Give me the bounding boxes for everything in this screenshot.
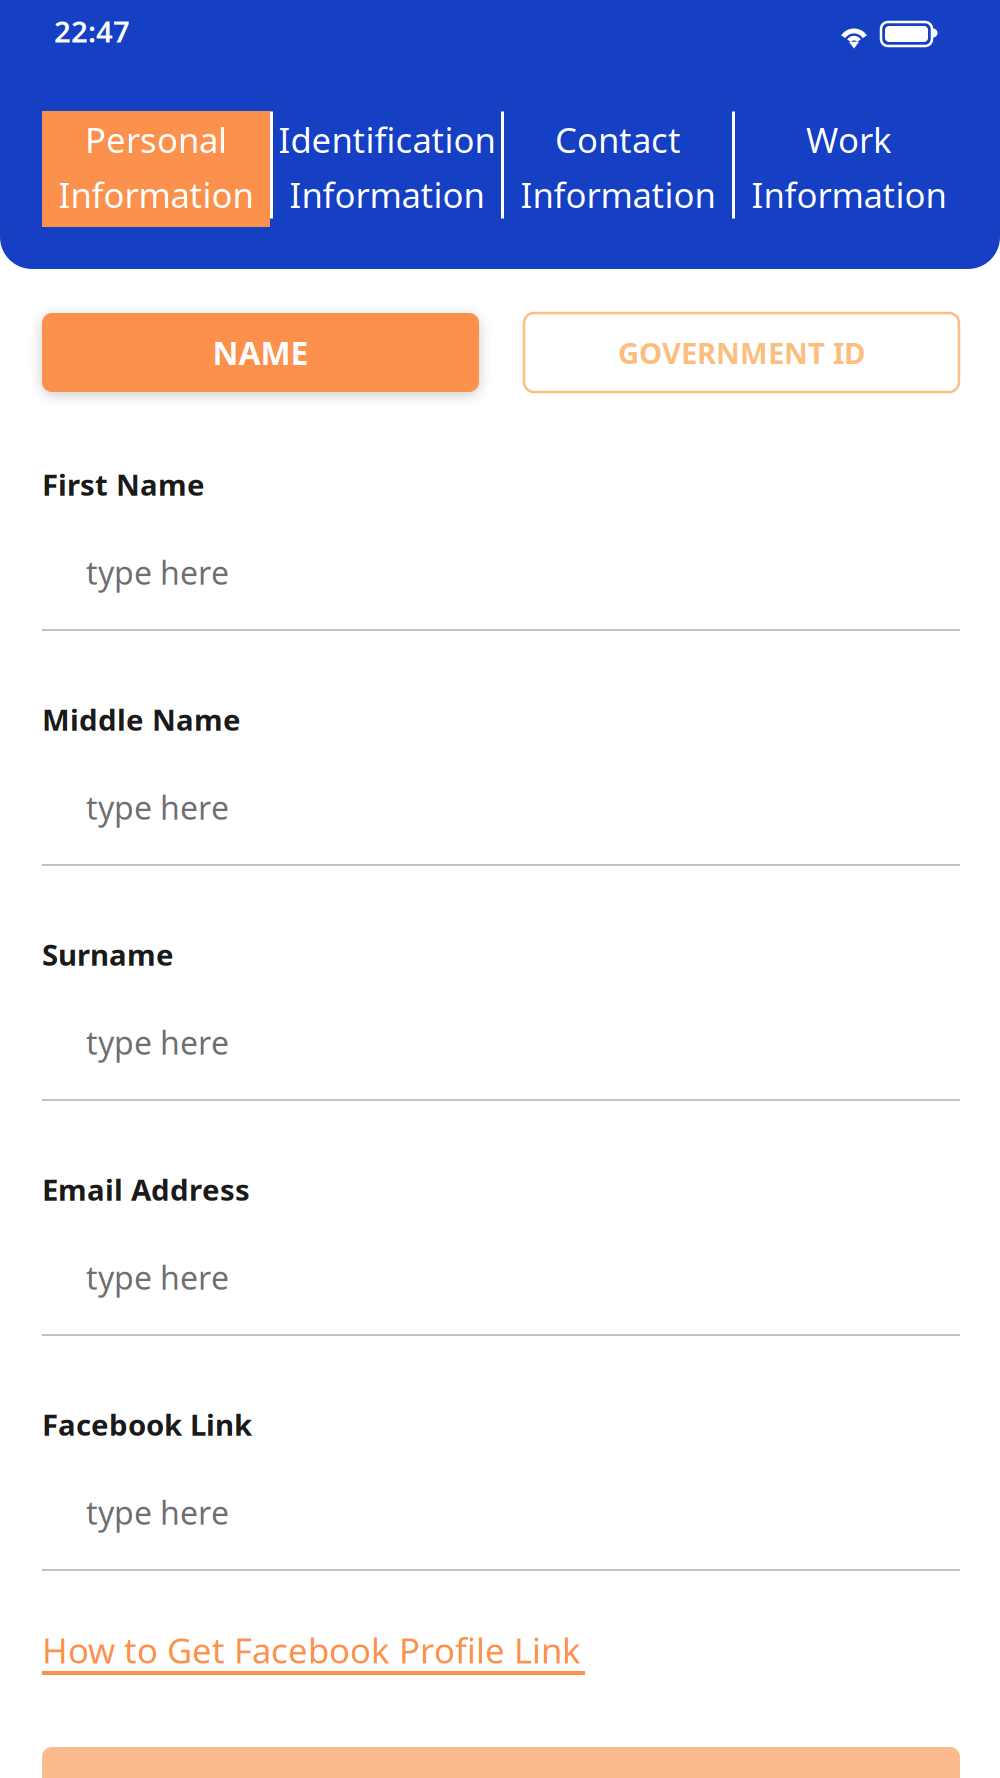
staticText: Email Address xyxy=(42,1170,250,1209)
staticText: Information xyxy=(58,171,253,217)
staticText: Information xyxy=(289,171,484,217)
staticText: type here xyxy=(86,551,229,593)
button[interactable]: Identification xyxy=(273,111,501,227)
staticText: Contact xyxy=(555,116,681,162)
staticText: Information xyxy=(520,171,715,217)
staticText: NAME xyxy=(212,331,308,374)
staticText: Facebook Link xyxy=(42,1405,252,1444)
staticText: Information xyxy=(751,171,946,217)
staticText: type here xyxy=(86,1021,229,1063)
staticText: First Name xyxy=(42,465,205,504)
button[interactable]: Work xyxy=(735,111,963,227)
staticText: Work xyxy=(806,116,892,162)
button[interactable]: NAME xyxy=(42,313,479,392)
button[interactable]: GOVERNMENT ID xyxy=(524,313,959,392)
staticText: type here xyxy=(86,1256,229,1298)
button[interactable]: Contact xyxy=(504,111,732,227)
staticText: type here xyxy=(86,1491,229,1533)
staticText: Identification xyxy=(278,116,495,162)
staticText: type here xyxy=(86,786,229,828)
staticText: Surname xyxy=(42,935,174,974)
staticText: Personal xyxy=(85,116,227,162)
button[interactable]: Next xyxy=(42,1747,960,1778)
staticText: GOVERNMENT ID xyxy=(618,333,865,372)
button[interactable]: Personal xyxy=(42,111,270,227)
staticText: 22:47 xyxy=(54,11,130,50)
staticText: How to Get Facebook Profile Link xyxy=(42,1627,581,1673)
staticText: Middle Name xyxy=(42,700,241,739)
button[interactable]: How to Get Facebook Profile Link xyxy=(42,1627,602,1677)
